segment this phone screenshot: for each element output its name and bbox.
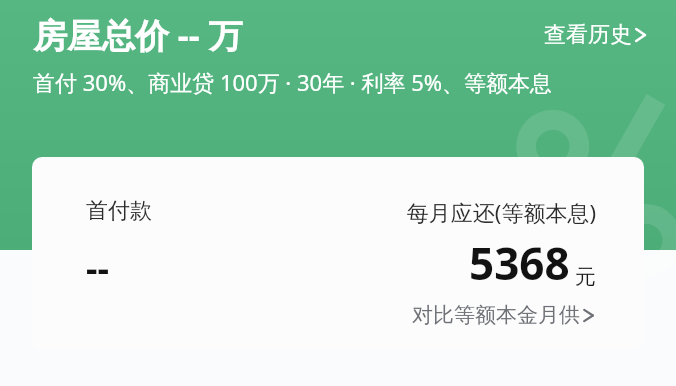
- staticText: 首付 30%、商业贷 100万 · 30年 · 利率 5%、等额本息: [33, 67, 553, 97]
- button[interactable]: 对比等额本金月供: [410, 299, 596, 331]
- staticText: 对比等额本金月供: [412, 302, 580, 328]
- staticText: 元: [575, 264, 596, 290]
- staticText: 首付款: [86, 197, 152, 225]
- staticText: 5368: [469, 233, 570, 293]
- staticText: 房屋总价 -- 万: [33, 12, 243, 58]
- staticText: 每月应还(等额本息): [406, 197, 596, 227]
- button[interactable]: 首付款: [32, 157, 644, 350]
- staticText: 查看历史: [544, 21, 632, 49]
- staticText: --: [86, 243, 110, 292]
- button[interactable]: 查看历史: [540, 15, 650, 55]
